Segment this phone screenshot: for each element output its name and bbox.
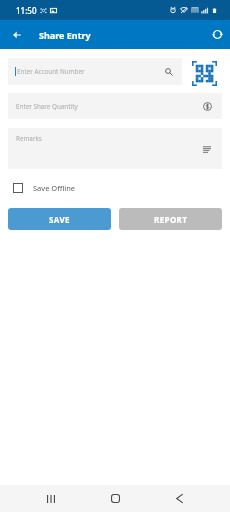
staticText: Enter Account Number (17, 67, 85, 76)
button[interactable]: Enter Account Number (8, 58, 182, 85)
staticText: SAVE (49, 214, 70, 225)
button[interactable]: Home (102, 485, 129, 512)
button[interactable]: Scan QR code (192, 61, 217, 86)
button[interactable]: Recents (37, 485, 64, 512)
button[interactable]: Remarks (8, 128, 222, 169)
button[interactable]: Save Offline (13, 183, 76, 193)
button[interactable]: SAVE (8, 208, 111, 230)
button[interactable]: Enter Share Quantity (8, 93, 222, 119)
button[interactable]: Sync (204, 20, 230, 49)
staticText: Remarks (16, 134, 42, 143)
staticText: Save Offline (33, 183, 76, 193)
button[interactable]: REPORT (119, 208, 222, 230)
button[interactable]: Back (166, 485, 193, 512)
staticText: REPORT (154, 214, 188, 225)
staticText: Share Entry (39, 29, 91, 41)
staticText: Enter Share Quantity (16, 102, 78, 111)
staticText: 11:50 (16, 5, 37, 16)
button[interactable]: Back (0, 20, 33, 49)
